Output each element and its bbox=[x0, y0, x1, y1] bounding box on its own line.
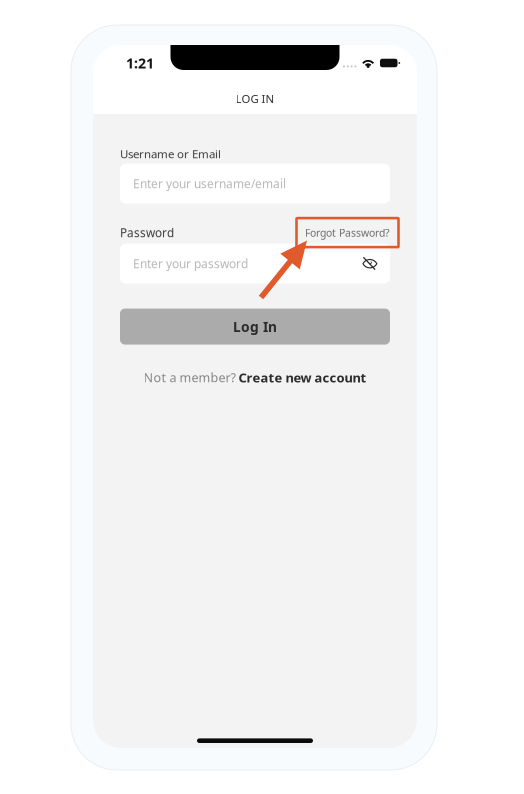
button[interactable]: Forgot Password? bbox=[305, 225, 390, 240]
staticText: Not a member? bbox=[143, 369, 238, 386]
staticText: 1:21 bbox=[126, 53, 154, 73]
staticText: Enter your username/email bbox=[133, 175, 286, 192]
staticText: Enter your password bbox=[133, 255, 248, 272]
staticText: Log In bbox=[233, 317, 277, 336]
button[interactable]: Show password bbox=[362, 246, 390, 281]
staticText: Username or Email bbox=[120, 146, 221, 162]
staticText: Create new account bbox=[238, 369, 366, 386]
button[interactable]: Not a member? bbox=[120, 369, 390, 386]
staticText: Forgot Password? bbox=[305, 225, 390, 240]
button[interactable]: Log In bbox=[120, 309, 390, 345]
staticText: Password bbox=[120, 225, 174, 241]
staticText: LOG IN bbox=[235, 91, 274, 106]
